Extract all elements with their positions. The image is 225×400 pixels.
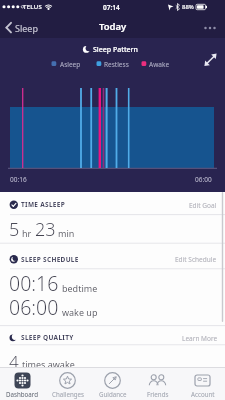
button[interactable] <box>200 49 221 69</box>
staticText: hr <box>22 227 32 239</box>
staticText: times awake <box>22 358 75 370</box>
staticText: 06:00 <box>195 175 212 184</box>
staticText: bedtime <box>62 282 98 294</box>
staticText: SLEEP QUALITY <box>21 333 74 342</box>
button[interactable]: Friends <box>135 368 180 400</box>
staticText: Learn More <box>182 334 218 343</box>
button[interactable]: Challenges <box>45 368 90 400</box>
staticText: Today <box>99 20 127 33</box>
staticText: 00:16 <box>9 270 59 297</box>
staticText: Edit Goal <box>189 201 217 210</box>
staticText: 88% <box>182 3 194 11</box>
staticText: Challenges <box>52 390 84 398</box>
staticText: Edit Schedule <box>175 255 217 264</box>
staticText: Guidance <box>99 390 127 398</box>
button[interactable] <box>171 251 221 265</box>
staticText: 4 <box>9 350 19 373</box>
staticText: TELUS <box>23 3 43 11</box>
staticText: Sleep <box>15 22 38 34</box>
button[interactable] <box>185 197 221 211</box>
staticText: Friends <box>147 390 169 398</box>
staticText: wake up <box>62 306 98 318</box>
staticText: 23 <box>35 217 56 242</box>
staticText: 5 <box>9 217 20 242</box>
button[interactable]: Dashboard <box>0 368 45 400</box>
staticText: Account <box>191 390 215 398</box>
button[interactable]: Account <box>180 368 225 400</box>
button[interactable]: Guidance <box>90 368 135 400</box>
staticText: Sleep Pattern <box>93 45 138 55</box>
staticText: Restless <box>104 60 129 69</box>
staticText: TIME ASLEEP <box>21 200 66 209</box>
button[interactable] <box>198 20 222 36</box>
staticText: min <box>58 227 75 239</box>
staticText: Awake <box>149 60 170 69</box>
staticText: Dashboard <box>6 390 39 398</box>
staticText: Asleep <box>60 60 81 69</box>
staticText: 00:16 <box>10 175 27 184</box>
staticText: SLEEP SCHEDULE <box>21 255 79 264</box>
staticText: 06:00 <box>9 294 59 321</box>
staticText: 07:14 <box>103 3 120 12</box>
button[interactable] <box>178 330 221 344</box>
button[interactable]: Sleep <box>2 18 44 36</box>
